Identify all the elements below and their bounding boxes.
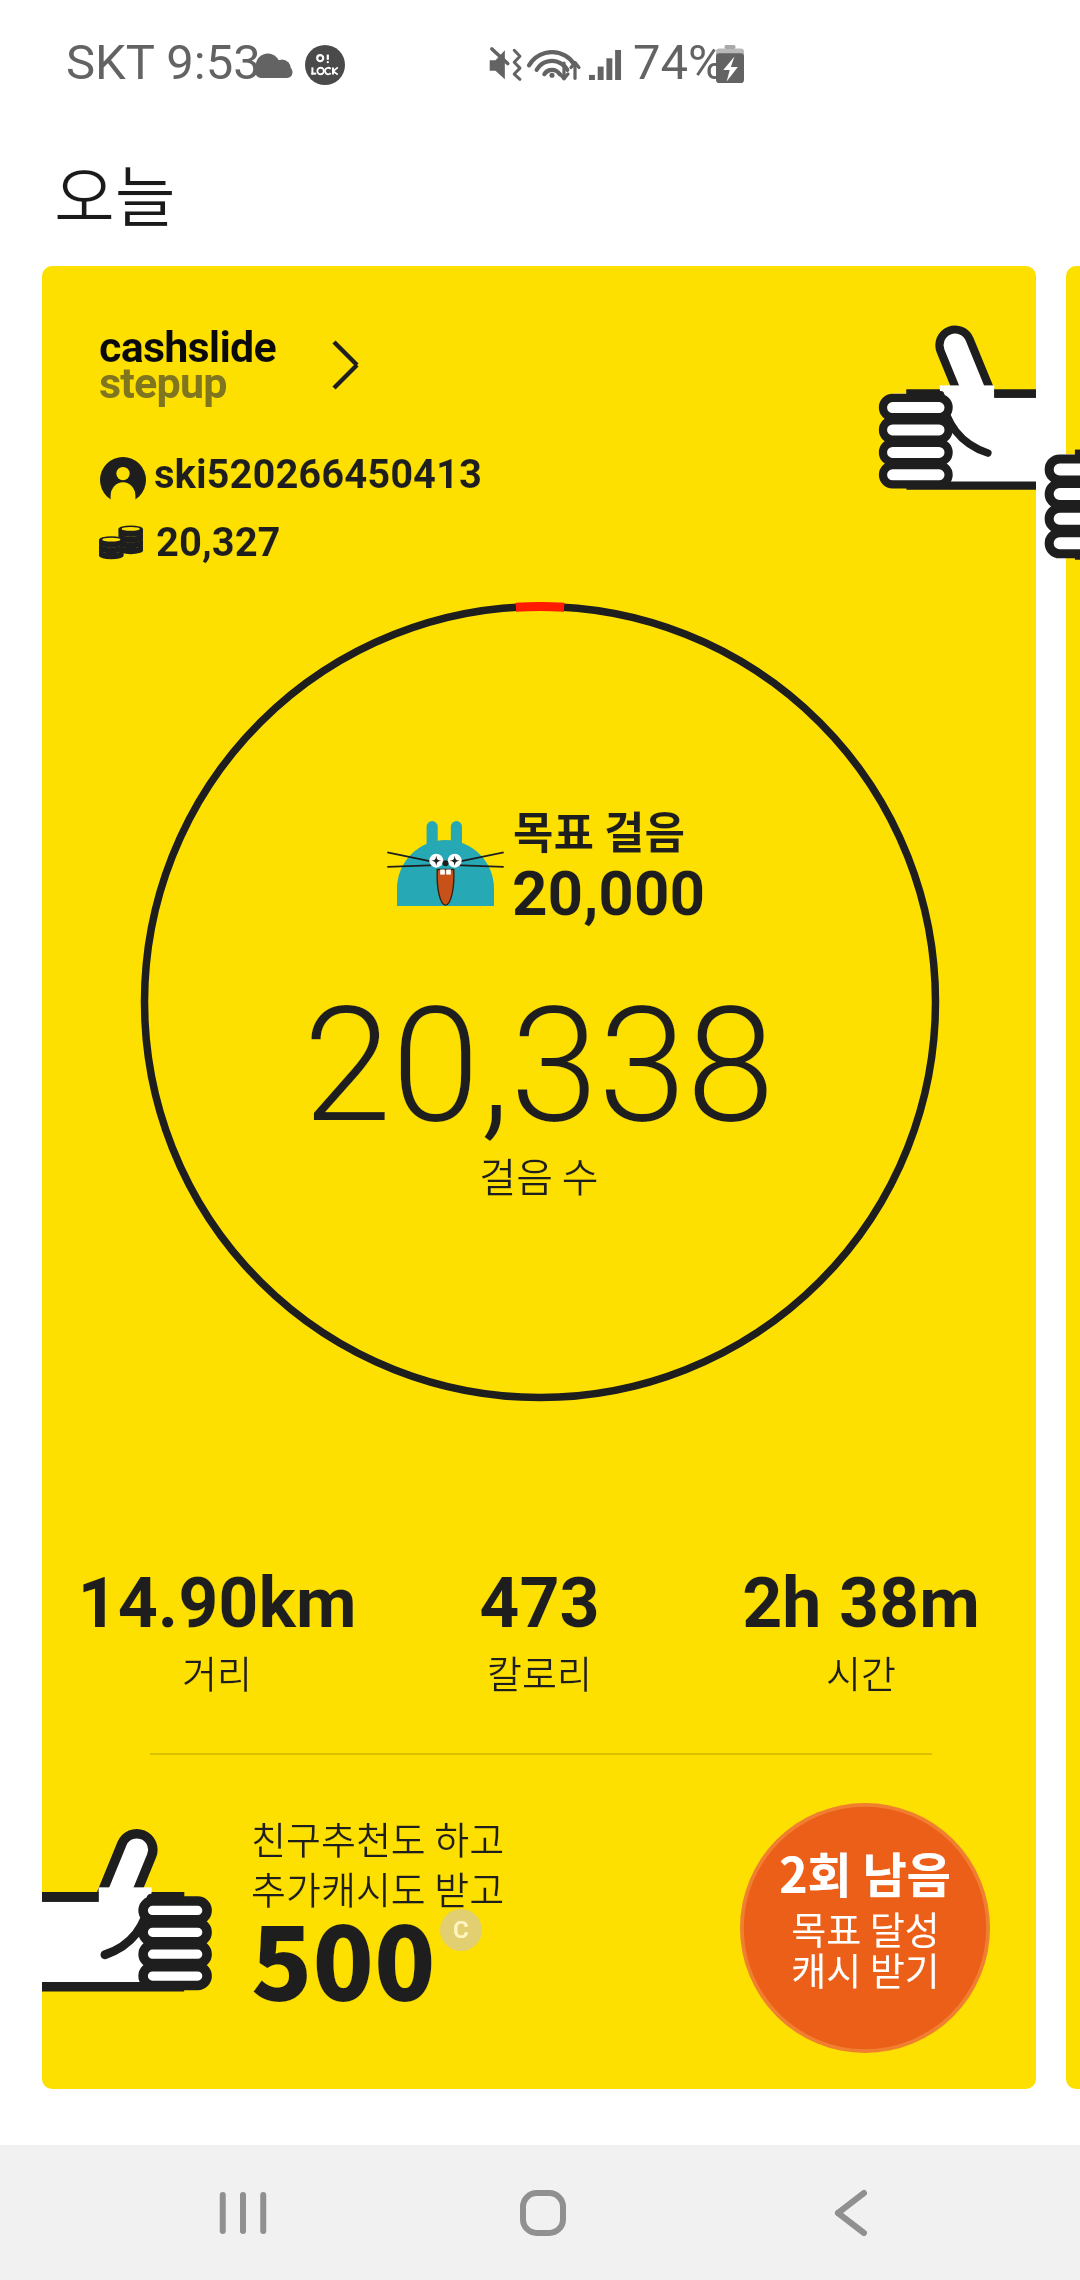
staticText: cashslide [99, 322, 276, 372]
staticText: 오늘 [54, 144, 176, 240]
staticText: 목표 달성 [791, 1900, 940, 1955]
staticText: 2회 남음 [779, 1837, 951, 1907]
button[interactable]: Home [463, 2145, 623, 2280]
staticText: 473 [479, 1562, 600, 1644]
staticText: 2h 38m [742, 1562, 980, 1644]
staticText: 500 [251, 1884, 436, 2030]
staticText: 친구추천도 하고 [251, 1810, 505, 1865]
staticText: 20,338 [303, 972, 775, 1158]
button[interactable]: Recent apps [163, 2145, 323, 2280]
button[interactable]: cashslide [42, 266, 1036, 2089]
staticText: 추가캐시도 받고 [251, 1860, 505, 1915]
staticText: 거리 [182, 1644, 252, 1699]
staticText: 20,000 [512, 857, 706, 930]
staticText: C [453, 1916, 469, 1944]
staticText: SKT 9:53 [66, 34, 261, 91]
staticText: 시간 [826, 1644, 896, 1699]
button[interactable]: Back [771, 2145, 931, 2280]
staticText: 20,327 [156, 519, 281, 566]
staticText: 74% [633, 34, 724, 91]
staticText: 걸음 수 [479, 1146, 599, 1204]
staticText: 14.90km [77, 1562, 357, 1644]
staticText: 칼로리 [487, 1644, 592, 1699]
staticText: stepup [99, 358, 227, 408]
button[interactable]: 2회 남음 [740, 1803, 990, 2053]
staticText: ski520266450413 [154, 451, 482, 498]
staticText: 목표 걸음 [513, 798, 685, 862]
staticText: 캐시 받기 [791, 1941, 940, 1996]
